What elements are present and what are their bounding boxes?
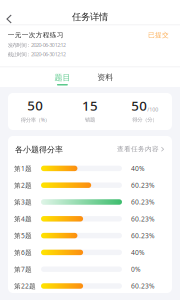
- staticText: 发布时间： 2020-06-30 12:12: [8, 41, 66, 48]
- button[interactable]: 查看任务内容: [117, 145, 164, 153]
- staticText: 第6题: [14, 248, 32, 257]
- staticText: 0%: [131, 265, 141, 274]
- staticText: 第1题: [14, 164, 32, 173]
- button[interactable]: 返回: [0, 0, 24, 34]
- staticText: 60.23%: [131, 282, 155, 290]
- staticText: 第22题: [14, 282, 36, 290]
- staticText: 60.23%: [131, 231, 155, 240]
- staticText: 题目: [54, 73, 70, 82]
- staticText: 一元一次方程练习: [8, 31, 64, 39]
- staticText: 60.23%: [131, 198, 155, 206]
- staticText: 50: [27, 96, 43, 114]
- staticText: 截止时间： 2020-06-30 12:12: [8, 51, 66, 58]
- staticText: 任务详情: [72, 11, 108, 23]
- staticText: 得分（分）: [132, 116, 157, 123]
- staticText: 各小题得分率: [15, 145, 63, 154]
- staticText: 第2题: [14, 181, 32, 190]
- staticText: 错题: [85, 116, 95, 123]
- staticText: 得分率（%）: [21, 116, 50, 123]
- button[interactable]: 资料: [88, 72, 122, 87]
- button[interactable]: 题目: [45, 72, 79, 87]
- staticText: 第4题: [14, 214, 32, 223]
- staticText: 第3题: [14, 198, 32, 206]
- staticText: 资料: [97, 72, 113, 82]
- staticText: 50: [131, 97, 147, 114]
- staticText: 40%: [131, 248, 145, 257]
- staticText: 查看任务内容: [117, 145, 159, 153]
- staticText: 15: [82, 97, 98, 114]
- staticText: 40%: [131, 164, 145, 173]
- staticText: 60.23%: [131, 181, 155, 190]
- staticText: 60.23%: [131, 214, 155, 223]
- staticText: 已提交: [148, 31, 169, 39]
- staticText: 第7题: [14, 265, 32, 274]
- staticText: /100: [147, 106, 158, 113]
- staticText: 第5题: [14, 231, 32, 240]
